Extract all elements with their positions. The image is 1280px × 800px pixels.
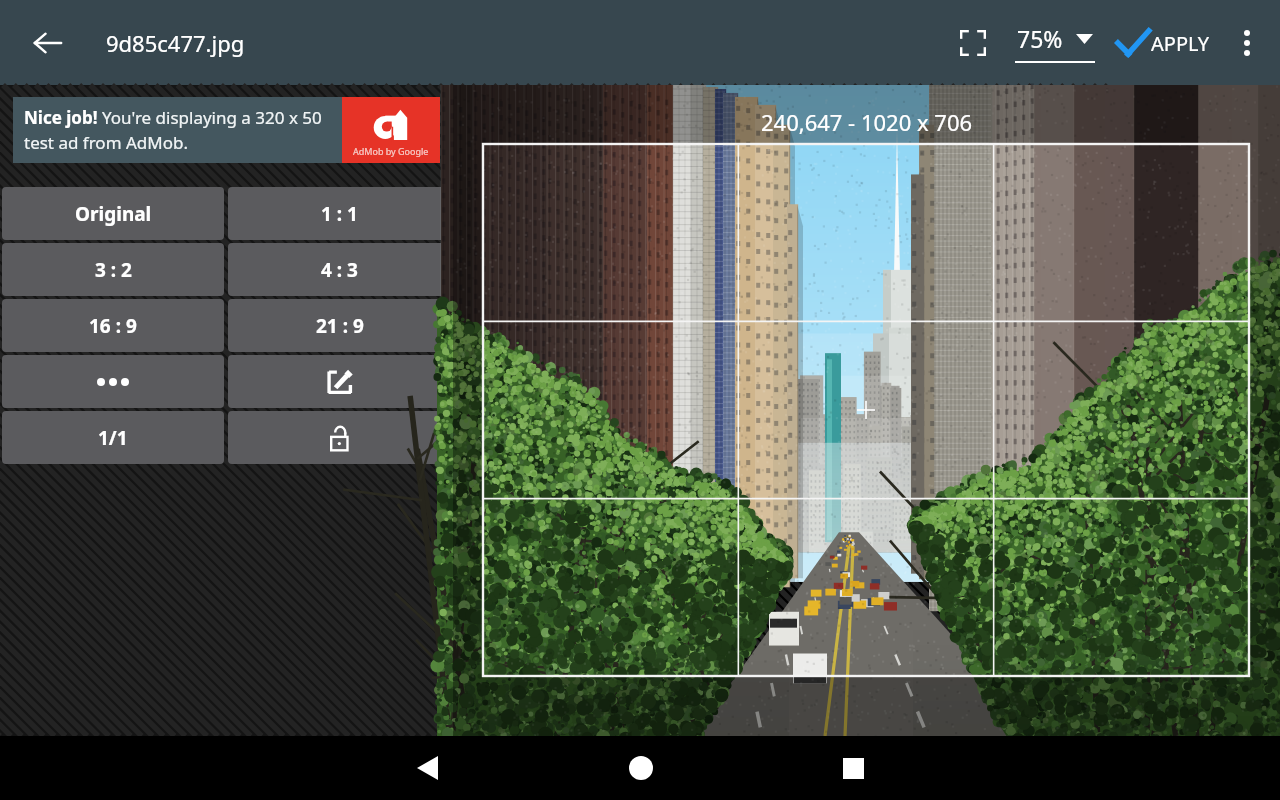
staticText: 75% bbox=[1017, 23, 1063, 54]
staticText: AdMob by Google bbox=[353, 145, 429, 157]
staticText: APPLY bbox=[1151, 30, 1210, 57]
button[interactable]: Recents bbox=[747, 736, 960, 800]
staticText: 16 : 9 bbox=[89, 313, 137, 339]
staticText: test ad from AdMob. bbox=[24, 131, 188, 154]
staticText: 240,647 - 1020 x 706 bbox=[761, 107, 973, 137]
staticText: 4 : 3 bbox=[321, 257, 358, 283]
button[interactable]: Back bbox=[320, 736, 534, 800]
button[interactable]: AdMob by Google bbox=[342, 97, 440, 163]
staticText: 9d85c477.jpg bbox=[106, 28, 245, 58]
button[interactable]: Nice job! bbox=[13, 97, 342, 163]
button[interactable]: 21 : 9 bbox=[228, 299, 451, 352]
button[interactable]: 1/1 bbox=[2, 411, 224, 464]
button[interactable] bbox=[228, 411, 451, 464]
button[interactable]: Back bbox=[26, 21, 70, 65]
staticText: 3 : 2 bbox=[95, 257, 132, 283]
button[interactable] bbox=[228, 355, 451, 408]
staticText: Original bbox=[75, 201, 152, 227]
button[interactable]: 75% bbox=[1011, 17, 1099, 69]
staticText: 1 : 1 bbox=[321, 201, 358, 227]
button[interactable]: 16 : 9 bbox=[2, 299, 224, 352]
staticText: Nice job! bbox=[24, 106, 102, 129]
button[interactable]: Original bbox=[2, 187, 224, 240]
button[interactable]: 3 : 2 bbox=[2, 243, 224, 296]
button[interactable]: Fullscreen bbox=[945, 15, 1001, 71]
button[interactable] bbox=[2, 355, 224, 408]
staticText: 1/1 bbox=[98, 425, 128, 451]
button[interactable]: APPLY bbox=[1111, 17, 1214, 69]
staticText: You're displaying a 320 x 50 bbox=[102, 106, 322, 129]
button[interactable]: 4 : 3 bbox=[228, 243, 451, 296]
button[interactable]: 1 : 1 bbox=[228, 187, 451, 240]
staticText: 21 : 9 bbox=[316, 313, 364, 339]
button[interactable]: More options bbox=[1220, 16, 1274, 70]
button[interactable]: Home bbox=[534, 736, 747, 800]
